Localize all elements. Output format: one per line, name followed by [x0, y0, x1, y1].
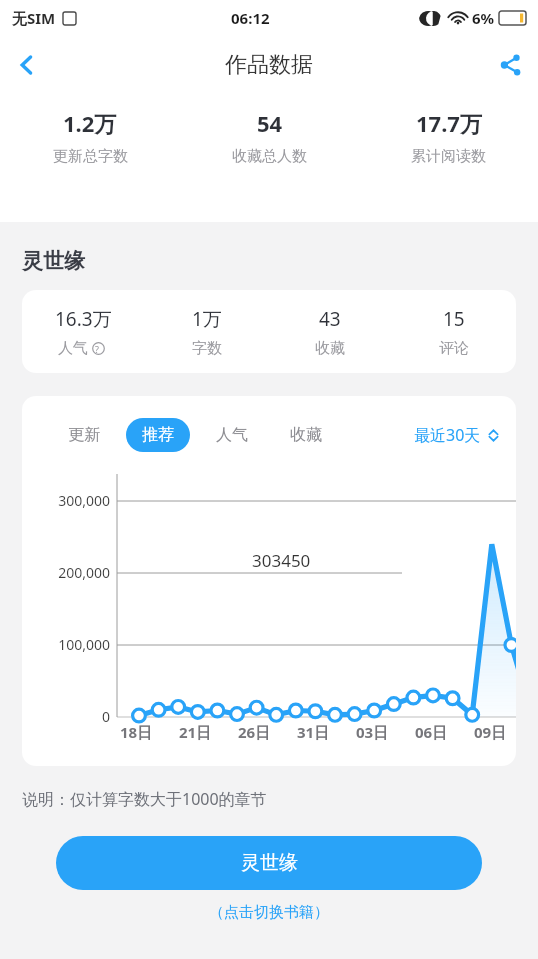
- staticText: 推荐: [142, 425, 174, 445]
- button[interactable]: 收藏: [274, 418, 338, 452]
- staticText: 评论: [439, 339, 469, 358]
- button[interactable]: 1万: [145, 306, 268, 358]
- staticText: 灵世缘: [22, 248, 85, 274]
- staticText: 31日: [297, 722, 330, 742]
- button[interactable]: 返回: [0, 38, 54, 92]
- staticText: 说明：仅计算字数大于1000的章节: [22, 788, 267, 810]
- staticText: 300,000: [58, 491, 110, 510]
- button[interactable]: 人气: [200, 418, 264, 452]
- staticText: 17.7万: [416, 108, 482, 138]
- button[interactable]: 43: [268, 306, 392, 358]
- button[interactable]: 推荐: [126, 418, 190, 452]
- button[interactable]: 分享: [484, 38, 538, 92]
- button[interactable]: 17.7万: [359, 108, 538, 166]
- staticText: 54: [257, 108, 283, 138]
- staticText: 更新: [68, 425, 100, 445]
- button[interactable]: 最近30天: [414, 420, 500, 450]
- staticText: （点击切换书籍）: [209, 903, 329, 922]
- staticText: 收藏: [290, 425, 322, 445]
- button[interactable]: 16.3万: [22, 306, 145, 358]
- staticText: 21日: [179, 722, 212, 742]
- button[interactable]: 1.2万: [0, 108, 180, 166]
- staticText: 16.3万: [55, 306, 112, 332]
- staticText: 06:12: [231, 8, 270, 28]
- staticText: 100,000: [58, 635, 110, 654]
- button[interactable]: 16.3万: [22, 290, 516, 373]
- button[interactable]: （点击切换书籍）: [205, 899, 333, 926]
- staticText: 1.2万: [63, 108, 117, 138]
- staticText: 18日: [120, 722, 153, 742]
- staticText: 26日: [238, 722, 271, 742]
- staticText: 1万: [192, 306, 222, 332]
- staticText: 200,000: [58, 563, 110, 582]
- staticText: 人气: [58, 339, 88, 358]
- staticText: ?: [95, 343, 99, 355]
- staticText: 字数: [192, 339, 222, 358]
- staticText: 人气: [216, 425, 248, 445]
- staticText: 累计阅读数: [411, 147, 486, 166]
- staticText: 15: [443, 306, 465, 332]
- staticText: 06日: [415, 722, 448, 742]
- staticText: 收藏: [315, 339, 345, 358]
- staticText: 收藏总人数: [232, 147, 307, 166]
- staticText: 0: [101, 707, 110, 726]
- staticText: 03日: [356, 722, 389, 742]
- staticText: 最近30天: [414, 424, 481, 446]
- staticText: 09日: [474, 722, 507, 742]
- staticText: 6%: [472, 8, 495, 28]
- staticText: 作品数据: [225, 51, 313, 79]
- staticText: 43: [319, 306, 341, 332]
- button[interactable]: 54: [180, 108, 359, 166]
- staticText: 灵世缘: [241, 851, 298, 875]
- button[interactable]: 更新: [52, 418, 116, 452]
- staticText: 更新总字数: [53, 147, 128, 166]
- button[interactable]: 灵世缘: [56, 836, 482, 890]
- button[interactable]: 15: [392, 306, 516, 358]
- staticText: 303450: [252, 549, 311, 572]
- staticText: 无SIM: [12, 8, 56, 28]
